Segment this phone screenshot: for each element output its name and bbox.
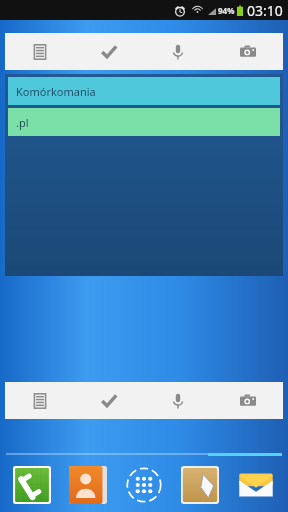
button[interactable]: Task xyxy=(74,382,143,419)
button[interactable]: Task xyxy=(74,33,143,70)
button[interactable]: S Note xyxy=(172,460,228,510)
staticText: 94% xyxy=(218,5,235,16)
button[interactable]: Notes xyxy=(5,33,74,70)
button[interactable]: .pl xyxy=(8,108,280,136)
button[interactable]: Camera xyxy=(213,382,283,419)
button[interactable]: Komórkomania xyxy=(8,77,280,105)
staticText: 03:10 xyxy=(247,1,283,20)
button[interactable]: Email xyxy=(228,460,284,510)
button[interactable]: Notes xyxy=(5,382,74,419)
button[interactable]: Apps xyxy=(116,460,172,510)
button[interactable]: Voice recording xyxy=(143,33,213,70)
button[interactable]: Camera xyxy=(213,33,283,70)
staticText: .pl xyxy=(16,115,29,130)
button[interactable]: Voice recording xyxy=(143,382,213,419)
staticText: Komórkomania xyxy=(16,84,96,99)
button[interactable]: Phone xyxy=(4,460,60,510)
button[interactable]: Contacts xyxy=(60,460,116,510)
